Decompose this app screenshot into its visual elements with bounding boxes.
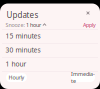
button[interactable]: 30 minutes	[0, 43, 100, 57]
button[interactable]: Snooze:	[5, 22, 46, 28]
staticText: Updates	[6, 9, 38, 20]
staticText: Apply	[83, 21, 96, 29]
staticText: 1 hour	[26, 21, 41, 29]
button[interactable]: Immediate	[71, 73, 95, 82]
staticText: 30 minutes	[5, 46, 40, 54]
staticText: Snooze:	[5, 21, 24, 29]
button[interactable]: 1 hour	[0, 57, 100, 71]
staticText: 15 minutes	[5, 32, 40, 40]
button[interactable]: Hourly	[6, 73, 27, 82]
button[interactable]: 15 minutes	[0, 29, 100, 43]
button[interactable]: Apply	[83, 22, 96, 28]
staticText: Hourly	[8, 74, 24, 81]
staticText: 1 hour	[5, 60, 26, 68]
button[interactable]: Close	[86, 11, 90, 15]
staticText: Immediate	[71, 70, 95, 85]
